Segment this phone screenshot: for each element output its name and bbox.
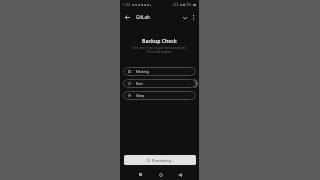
button[interactable]: More options <box>189 13 197 21</box>
staticText: Rest <box>136 82 143 86</box>
staticText: Backup Check <box>142 38 177 45</box>
button[interactable]: Home <box>156 170 165 179</box>
staticText: 32.6 <box>173 3 179 7</box>
button[interactable]: Sleep <box>123 91 196 100</box>
staticText: 76% <box>186 3 192 7</box>
staticText: Let's see if you've got backup tonight. … <box>132 46 187 54</box>
staticText: GitLab <box>136 14 150 20</box>
button[interactable]: Back <box>123 13 132 22</box>
button[interactable]: Back <box>175 170 184 179</box>
button[interactable]: Processing... <box>124 155 196 165</box>
button[interactable]: Expand <box>180 13 189 22</box>
staticText: 11:04 <box>123 3 130 7</box>
button[interactable]: Meeting <box>123 67 196 76</box>
staticText: Meeting <box>136 70 149 74</box>
staticText: Sleep <box>136 94 145 98</box>
button[interactable]: Rest <box>123 79 196 88</box>
staticText: Processing... <box>152 158 174 163</box>
button[interactable]: Recents <box>136 170 145 179</box>
